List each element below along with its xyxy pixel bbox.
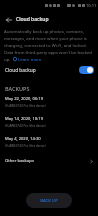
button[interactable]: Learn more [13,56,42,62]
staticText: HUAWEI P40 Pro (this device) [5,124,46,128]
staticText: 10:11 [86,3,97,8]
staticText: Cloud backup [5,67,36,74]
button[interactable]: May 4, 2020, 14:30 [0,135,98,153]
button[interactable]: May 22, 2020, 06:19 [0,95,98,113]
staticText: Other backups [5,158,34,164]
staticText: charging, connected to Wi-Fi, and locked… [4,42,87,48]
staticText: May 4, 2020, 14:30 [5,136,41,142]
button[interactable]: Cloud backup [0,63,98,77]
staticText: Cloud backup [16,16,49,23]
button[interactable]: Back [3,14,14,25]
staticText: BACKUPS [5,85,30,92]
staticText: HUAWEI P40 Pro (this device) [5,144,46,148]
staticText: Data from third-party apps won't be back… [4,49,92,55]
staticText: May 14, 2020, 18:19 [5,116,43,122]
staticText: BACK UP [40,198,58,204]
staticText: May 22, 2020, 06:19 [5,96,43,102]
staticText: HUAWEI P40 Pro (this device) [5,104,46,108]
staticText: Learn more [18,56,42,62]
staticText: Automatically back up photos, contacts, [4,28,85,34]
button[interactable]: May 14, 2020, 18:19 [0,115,98,133]
button[interactable]: Other backups [0,154,98,168]
staticText: messages, and more when your phone is [4,35,87,41]
staticText: up. [4,56,11,62]
button[interactable]: BACK UP [26,193,72,208]
